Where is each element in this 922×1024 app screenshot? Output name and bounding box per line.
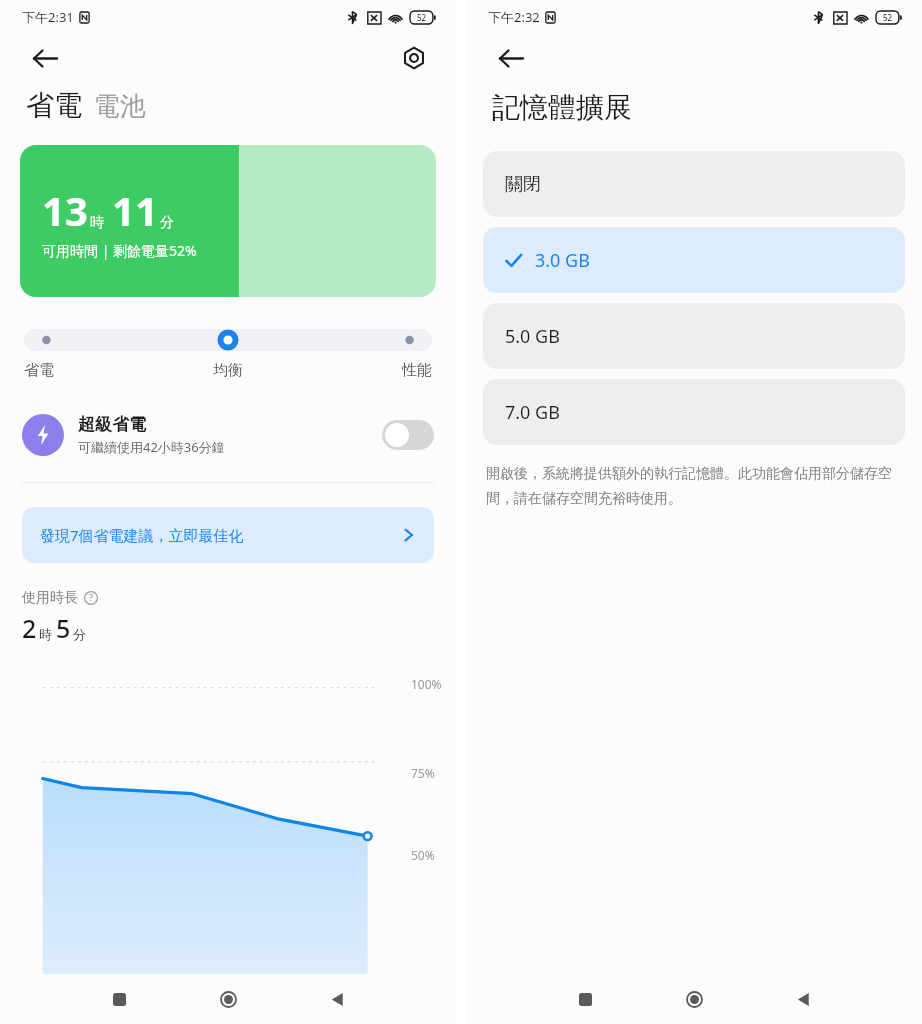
button[interactable]: Back <box>488 35 534 81</box>
staticText: ? <box>89 591 93 603</box>
staticText: 75% <box>411 765 435 781</box>
button[interactable]: 關閉 <box>483 151 905 217</box>
staticText: 性能 <box>296 361 432 380</box>
staticText: 時 <box>90 214 104 232</box>
button[interactable]: 超級省電 <box>0 408 456 462</box>
button[interactable]: Back <box>22 35 68 81</box>
staticText: 使用時長 <box>22 589 78 607</box>
staticText: 5.0 GB <box>505 324 560 349</box>
staticText: 52 <box>883 12 893 23</box>
button[interactable]: Back <box>783 979 823 1019</box>
button[interactable]: 3.0 GB <box>483 227 905 293</box>
staticText: 記憶體擴展 <box>492 90 632 125</box>
staticText: 省電 <box>26 88 82 123</box>
staticText: 超級省電 <box>78 414 146 435</box>
staticText: 2 <box>22 611 37 645</box>
button[interactable]: 5.0 GB <box>483 303 905 369</box>
staticText: 下午2:31 <box>22 8 74 26</box>
staticText: 發現7個省電建議，立即最佳化 <box>40 525 402 545</box>
staticText: 電池 <box>94 90 146 123</box>
button[interactable]: Back <box>317 979 357 1019</box>
staticText: 52 <box>417 12 427 23</box>
button[interactable]: Settings <box>394 38 434 78</box>
button[interactable]: 13 <box>20 145 436 297</box>
button[interactable]: Home <box>208 979 248 1019</box>
staticText: 開啟後，系統將提供額外的執行記憶體。此功能會佔用部分儲存空間，請在儲存空間充裕時… <box>486 465 902 507</box>
staticText: 5 <box>56 611 71 645</box>
staticText: 均衡 <box>160 361 296 380</box>
staticText: 分 <box>160 214 174 232</box>
staticText: 分 <box>73 626 86 642</box>
staticText: 時 <box>39 626 52 642</box>
staticText: 11 <box>112 183 158 237</box>
staticText: 100% <box>411 676 442 692</box>
button[interactable]: Recents <box>565 979 605 1019</box>
staticText: 可用時間 | 剩餘電量52% <box>42 241 197 260</box>
staticText: 13 <box>42 183 88 237</box>
button[interactable]: Super power saving toggle <box>382 420 434 450</box>
staticText: 7.0 GB <box>505 400 560 425</box>
staticText: 50% <box>411 847 435 863</box>
staticText: 3.0 GB <box>535 248 590 273</box>
staticText: 省電 <box>24 361 160 380</box>
staticText: 關閉 <box>505 173 541 196</box>
button[interactable] <box>24 329 432 351</box>
button[interactable]: 7.0 GB <box>483 379 905 445</box>
staticText: 下午2:32 <box>488 8 540 26</box>
button[interactable]: 發現7個省電建議，立即最佳化 <box>22 507 434 563</box>
staticText: 可繼續使用42小時36分鐘 <box>78 438 225 456</box>
button[interactable]: Recents <box>99 979 139 1019</box>
button[interactable]: Home <box>674 979 714 1019</box>
